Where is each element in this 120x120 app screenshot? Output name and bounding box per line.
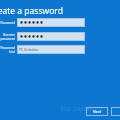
staticText: Password hint <box>0 46 15 54</box>
button[interactable] <box>17 18 85 27</box>
staticText: top password <box>61 104 103 113</box>
staticText: Create a password <box>0 5 63 16</box>
staticText: Reenter password <box>0 33 15 41</box>
staticText: Password <box>0 21 15 25</box>
button[interactable]: PC Unlocker <box>17 45 85 54</box>
staticText: PC Unlocker <box>19 47 39 52</box>
staticText: Next <box>93 109 101 114</box>
button[interactable]: Next <box>86 107 108 116</box>
button[interactable] <box>17 32 85 41</box>
button[interactable]: Back <box>111 107 120 116</box>
